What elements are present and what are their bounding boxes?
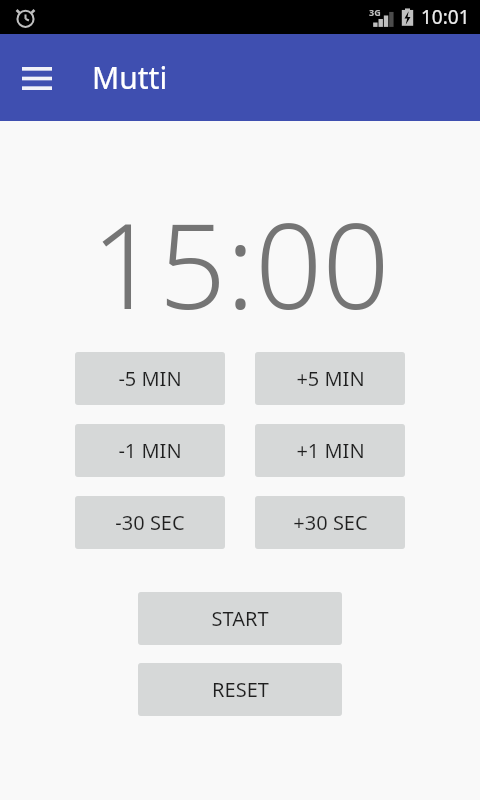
staticText: 3G [369, 6, 381, 18]
staticText: +5 MIN [296, 365, 365, 392]
staticText: +30 SEC [293, 509, 368, 536]
button[interactable]: -5 MIN [75, 352, 225, 405]
staticText: RESET [212, 676, 269, 703]
button[interactable]: START [138, 592, 342, 645]
button[interactable]: RESET [138, 663, 342, 716]
button[interactable]: -1 MIN [75, 424, 225, 477]
staticText: START [211, 605, 269, 632]
button[interactable]: +5 MIN [255, 352, 405, 405]
button[interactable]: +30 SEC [255, 496, 405, 549]
button[interactable]: +1 MIN [255, 424, 405, 477]
button[interactable]: -30 SEC [75, 496, 225, 549]
staticText: 15:00 [91, 183, 390, 344]
staticText: +1 MIN [296, 437, 365, 464]
staticText: -30 SEC [115, 509, 185, 536]
button[interactable]: Open navigation drawer [14, 55, 60, 101]
staticText: 10:01 [421, 4, 470, 30]
staticText: -1 MIN [118, 437, 182, 464]
staticText: Mutti [92, 57, 168, 98]
staticText: -5 MIN [118, 365, 182, 392]
